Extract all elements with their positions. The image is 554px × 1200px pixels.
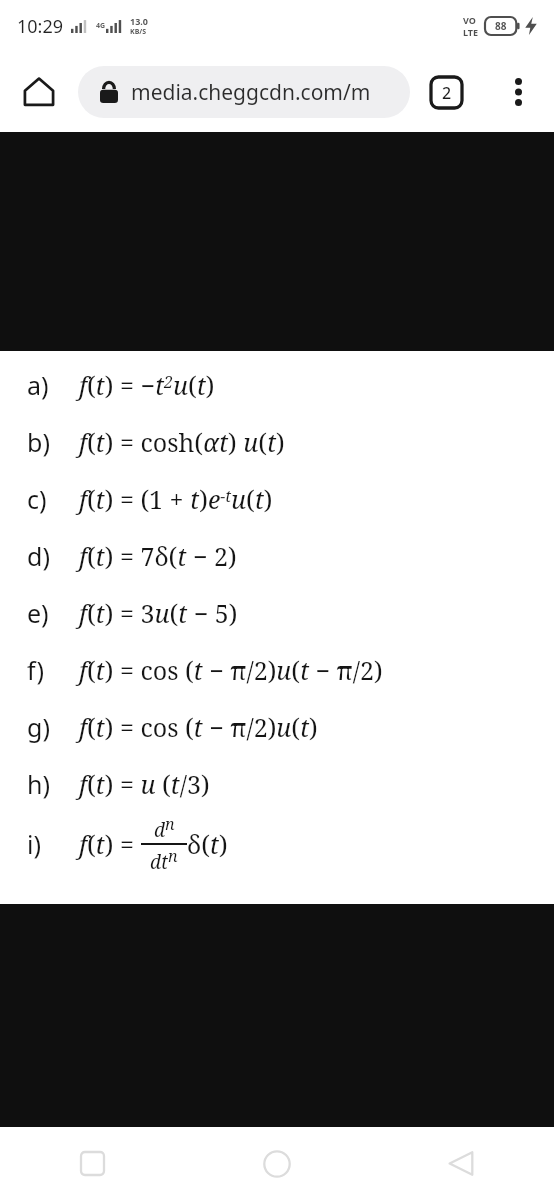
staticText: f(t) = −t2u(t) [79,368,215,402]
staticText: dtn [150,845,178,875]
staticText: f(t) = (1 + t)e−tu(t) [79,482,273,516]
staticText: f(t) = cosh(αt) u(t) [79,425,285,459]
button[interactable]: More options [483,52,554,132]
staticText: e) [27,596,49,630]
staticText: 10:29 [17,14,64,39]
staticText: δ(t) [187,827,228,861]
staticText: f(t) = u (t/3) [79,767,210,801]
staticText: f(t) = cos (t − π/2)u(t) [79,710,318,744]
staticText: dn [154,813,175,843]
staticText: f(t) = 7δ(t − 2) [79,539,237,573]
staticText: KB/S [130,27,147,37]
staticText: f) [27,653,45,687]
staticText: b) [27,425,50,459]
staticText: g) [27,710,50,744]
staticText: 88 [495,19,507,33]
staticText: 2 [442,82,452,104]
staticText: media.cheggcdn.com/m [131,78,371,107]
staticText: f(t) = cos (t − π/2)u(t − π/2) [79,653,383,687]
staticText: VO [463,14,476,26]
button[interactable]: Recent apps [0,1127,184,1200]
staticText: d) [27,539,50,573]
staticText: h) [27,767,50,801]
staticText: a) [27,368,49,402]
button[interactable]: Switch tabs, 2 open [410,52,483,132]
button[interactable]: Home [184,1127,369,1200]
staticText: 4G [96,21,106,31]
staticText: f(t) = 3u(t − 5) [79,596,238,630]
staticText: 13.0 [130,15,148,27]
staticText: c) [27,482,47,516]
button[interactable]: Back [369,1127,554,1200]
button[interactable]: Home page [0,52,78,132]
button[interactable]: media.cheggcdn.com/m [78,66,410,118]
staticText: f(t) = [79,827,141,861]
staticText: i) [27,827,41,861]
staticText: LTE [463,26,479,38]
